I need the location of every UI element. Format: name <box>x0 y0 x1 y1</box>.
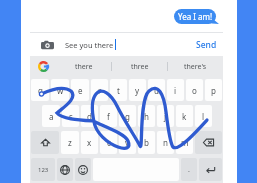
button[interactable]: n <box>157 131 174 154</box>
staticText: m <box>181 137 189 148</box>
button[interactable]: h <box>138 105 155 127</box>
staticText: r <box>98 85 102 96</box>
staticText: z <box>68 137 72 148</box>
button[interactable]: three <box>112 56 167 77</box>
button[interactable]: Numbers <box>31 158 55 181</box>
staticText: b <box>144 137 149 148</box>
staticText: g <box>125 111 130 122</box>
staticText: k <box>182 111 187 122</box>
staticText: w <box>57 85 64 96</box>
staticText: a <box>49 111 54 122</box>
button[interactable]: u <box>148 79 165 101</box>
button[interactable]: p <box>205 79 222 101</box>
button[interactable]: Camera <box>39 37 55 53</box>
button[interactable]: k <box>176 105 193 127</box>
button[interactable]: g <box>119 105 136 127</box>
button[interactable]: l <box>195 105 212 127</box>
staticText: Yea I am! <box>178 11 213 22</box>
staticText: 123 <box>38 166 49 174</box>
button[interactable]: c <box>100 131 117 154</box>
staticText: n <box>163 137 168 148</box>
staticText: j <box>164 111 167 122</box>
staticText: d <box>87 111 92 122</box>
button[interactable]: f <box>100 105 117 127</box>
staticText: c <box>107 137 111 148</box>
button[interactable]: Google <box>30 56 57 77</box>
button[interactable]: t <box>110 79 127 101</box>
button[interactable]: there <box>57 56 111 77</box>
staticText: Send <box>196 39 217 51</box>
staticText: See you there <box>65 40 114 50</box>
button[interactable]: d <box>81 105 98 127</box>
button[interactable]: Change language <box>57 158 73 181</box>
staticText: there <box>75 62 93 72</box>
staticText: s <box>69 111 73 122</box>
staticText: . <box>188 165 190 175</box>
button[interactable]: s <box>62 105 79 127</box>
staticText: e <box>78 85 83 96</box>
button[interactable]: Emoji <box>75 158 91 181</box>
button[interactable]: w <box>51 79 69 101</box>
button[interactable]: i <box>167 79 184 101</box>
button[interactable]: y <box>129 79 146 101</box>
button[interactable]: Send <box>190 33 223 56</box>
staticText: y <box>135 85 140 96</box>
button[interactable]: q <box>31 79 49 101</box>
staticText: x <box>87 137 92 148</box>
button[interactable]: v <box>119 131 136 154</box>
staticText: l <box>202 111 205 122</box>
button[interactable]: a <box>42 105 60 127</box>
button[interactable]: Backspace <box>195 131 222 154</box>
button[interactable]: z <box>61 131 79 154</box>
button[interactable]: x <box>81 131 98 154</box>
staticText: h <box>144 111 149 122</box>
staticText: v <box>125 137 130 148</box>
staticText: f <box>107 111 110 122</box>
staticText: o <box>192 85 197 96</box>
button[interactable]: r <box>91 79 108 101</box>
button[interactable]: b <box>138 131 155 154</box>
button[interactable]: o <box>186 79 203 101</box>
staticText: i <box>174 85 177 96</box>
staticText: three <box>131 62 149 72</box>
button[interactable]: Shift <box>31 131 59 154</box>
button[interactable]: m <box>176 131 193 154</box>
button[interactable]: Period <box>181 158 197 181</box>
button[interactable]: there's <box>168 56 223 77</box>
button[interactable]: See you there <box>60 36 190 53</box>
staticText: q <box>38 85 43 96</box>
button[interactable]: e <box>71 79 89 101</box>
button[interactable]: Enter <box>199 158 222 181</box>
staticText: p <box>211 85 216 96</box>
staticText: t <box>117 85 120 96</box>
staticText: there's <box>184 62 207 72</box>
staticText: u <box>154 85 159 96</box>
button[interactable]: j <box>157 105 174 127</box>
